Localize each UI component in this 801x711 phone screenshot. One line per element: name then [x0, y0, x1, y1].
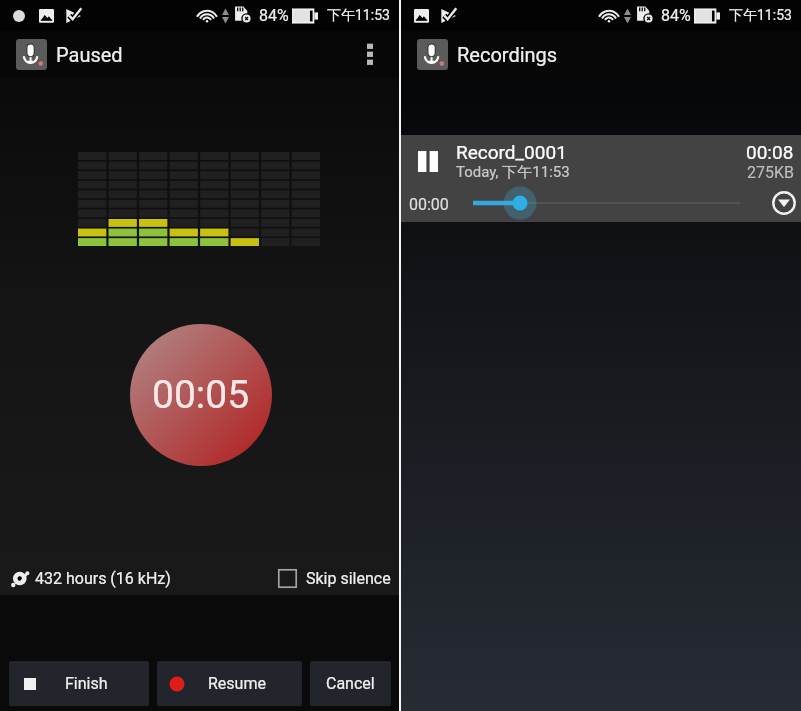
- staticText: 00:08: [746, 141, 794, 163]
- button[interactable]: Finish: [9, 661, 149, 706]
- staticText: 275KB: [747, 163, 794, 182]
- button[interactable]: Cancel: [310, 661, 391, 706]
- staticText: 00:05: [152, 372, 250, 418]
- staticText: Cancel: [326, 674, 375, 693]
- staticText: Skip silence: [306, 569, 391, 588]
- staticText: Today, 下午11:53: [456, 163, 570, 182]
- button[interactable]: Seek: [401, 187, 801, 221]
- staticText: Recordings: [457, 43, 558, 66]
- button[interactable]: Skip silence: [278, 560, 391, 596]
- staticText: Paused: [56, 43, 123, 66]
- staticText: 00:00: [409, 195, 449, 214]
- staticText: 下午11:53: [327, 7, 390, 25]
- button[interactable]: Record_0001: [401, 135, 801, 222]
- staticText: 84%: [661, 6, 691, 25]
- button[interactable]: Resume: [157, 661, 302, 706]
- staticText: 432 hours (16 kHz): [35, 569, 171, 588]
- staticText: 84%: [259, 6, 289, 25]
- staticText: Resume: [208, 674, 266, 693]
- button[interactable]: More options: [341, 31, 399, 78]
- staticText: Record_0001: [456, 141, 567, 163]
- button[interactable]: Expand: [768, 187, 800, 219]
- staticText: 下午11:53: [729, 7, 792, 25]
- button[interactable]: 00:05: [130, 324, 272, 466]
- staticText: Finish: [65, 674, 108, 693]
